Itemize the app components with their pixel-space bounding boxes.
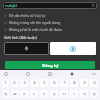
button[interactable]: p	[90, 90, 98, 98]
button[interactable]: i	[70, 90, 78, 98]
button[interactable]: u	[60, 90, 68, 98]
staticText: 5	[43, 80, 46, 86]
staticText: 8	[73, 80, 76, 86]
button[interactable]: r	[30, 90, 38, 98]
button[interactable]: o	[80, 90, 88, 98]
staticText: i	[73, 91, 75, 97]
staticText: Giới tính (Bắt buộc)	[4, 35, 37, 40]
button[interactable]: 7	[60, 79, 68, 87]
staticText: r	[33, 91, 35, 97]
button[interactable]: w	[11, 90, 18, 98]
staticText: w	[13, 91, 17, 97]
staticText: 2	[13, 80, 16, 86]
other: Clear	[92, 4, 95, 7]
staticText: 4	[33, 80, 36, 86]
staticText: 9	[83, 80, 86, 86]
button[interactable]: Emoji	[3, 71, 9, 77]
button[interactable]: Clipboard	[47, 71, 53, 77]
button[interactable]: y	[50, 90, 58, 98]
staticText: 3	[23, 80, 26, 86]
staticText: e	[23, 91, 26, 97]
button[interactable]: 4	[30, 79, 38, 87]
staticText: q	[4, 91, 7, 97]
button[interactable]: 5	[40, 79, 48, 87]
button[interactable]: 0	[90, 79, 98, 87]
staticText: Đăng ký	[42, 63, 59, 68]
staticText: nuhjkl	[5, 3, 17, 8]
button[interactable]: 8	[70, 79, 78, 87]
staticText: o	[83, 91, 86, 97]
staticText: 1	[4, 80, 7, 86]
button[interactable]: Đăng ký	[5, 61, 95, 69]
staticText: 6	[53, 80, 56, 86]
staticText: Không trùng với tên người dùng	[9, 20, 61, 25]
staticText: Độ dài nhiều từ 6 ký tự	[9, 13, 46, 18]
button[interactable]: 9	[80, 79, 88, 87]
staticText: p	[93, 91, 96, 97]
button[interactable]: e	[20, 90, 28, 98]
button[interactable]: Account	[50, 42, 96, 55]
button[interactable]: 1	[2, 79, 9, 87]
button[interactable]: nuhjkl	[3, 2, 97, 9]
button[interactable]: 6	[50, 79, 58, 87]
staticText: 7	[63, 80, 66, 86]
staticText: y	[53, 91, 56, 97]
button[interactable]: q	[2, 90, 9, 98]
button[interactable]: 2	[11, 79, 18, 87]
button[interactable]: Voice input	[4, 42, 49, 55]
button[interactable]: 3	[20, 79, 28, 87]
button[interactable]: More	[91, 71, 97, 77]
staticText: Không phải là một chuỗi dễ đoán	[9, 27, 62, 32]
staticText: t	[43, 91, 45, 97]
button[interactable]: t	[40, 90, 48, 98]
button[interactable]: Sticker	[25, 71, 31, 77]
staticText: u	[63, 91, 66, 97]
button[interactable]: Settings	[69, 71, 75, 77]
staticText: 0	[93, 80, 96, 86]
